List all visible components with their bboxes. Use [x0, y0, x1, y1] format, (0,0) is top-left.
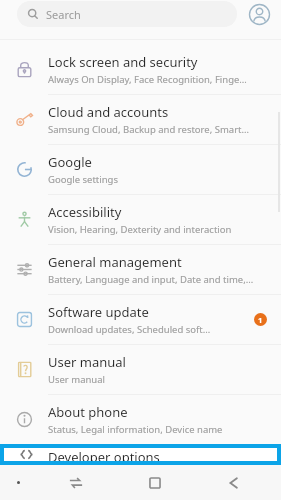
button[interactable]: Search — [17, 1, 237, 27]
button[interactable]: Back — [194, 465, 273, 500]
button[interactable]: Google — [0, 145, 281, 195]
staticText: 1 — [258, 315, 263, 325]
button[interactable]: Developer options — [4, 448, 277, 461]
staticText: User manual — [48, 353, 126, 371]
staticText: Status, Legal information, Device name — [48, 423, 223, 436]
staticText: Software update — [48, 303, 149, 321]
staticText: Always On Display, Face Recognition, Fin… — [48, 73, 247, 86]
staticText: Cloud and accounts — [48, 103, 169, 121]
button[interactable]: Cloud and accounts — [0, 95, 281, 145]
staticText: Accessibility — [48, 203, 122, 221]
button[interactable]: About phone — [0, 395, 281, 444]
button[interactable]: Account — [245, 0, 273, 28]
staticText: Google — [48, 153, 92, 171]
staticText: About phone — [48, 403, 128, 421]
staticText: General management — [48, 253, 182, 271]
staticText: Lock screen and security — [48, 53, 198, 71]
staticText: Samsung Cloud, Backup and restore, Smart… — [48, 123, 250, 136]
staticText: Vision, Hearing, Dexterity and interacti… — [48, 223, 232, 236]
staticText: Download updates, Scheduled soft… — [48, 323, 211, 336]
staticText: Google settings — [48, 173, 119, 186]
staticText: Search — [46, 7, 81, 22]
button[interactable]: Accessibility — [0, 195, 281, 245]
button[interactable]: General management — [0, 245, 281, 295]
button[interactable]: Lock screen and security — [0, 45, 281, 95]
staticText: Battery, Language and input, Date and ti… — [48, 273, 254, 286]
button[interactable]: User manual — [0, 345, 281, 395]
staticText: User manual — [48, 373, 105, 386]
button[interactable]: Software update — [0, 295, 281, 345]
button[interactable]: Home — [115, 465, 194, 500]
staticText: Developer options — [48, 448, 160, 461]
button[interactable]: Recents — [36, 465, 115, 500]
